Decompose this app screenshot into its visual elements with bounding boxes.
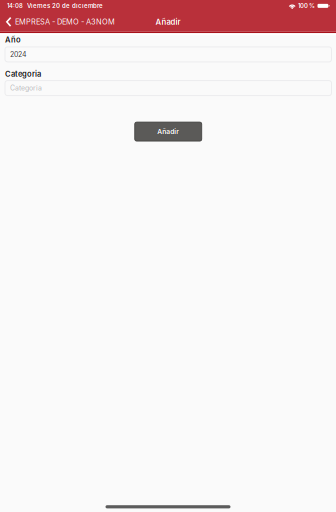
staticText: 14:08 — [7, 2, 23, 9]
staticText: Categoria — [5, 69, 41, 79]
staticText: Categoria — [10, 84, 42, 92]
staticText: Año — [5, 35, 21, 44]
button[interactable]: Categoria — [5, 81, 331, 96]
staticText: Añadir — [157, 128, 179, 136]
staticText: EMPRESA - DEMO - A3NOM — [15, 17, 115, 26]
staticText: Viernes 20 de diciembre — [27, 2, 103, 9]
staticText: 2024 — [10, 50, 26, 59]
staticText: 100 % — [298, 2, 315, 9]
button[interactable]: 2024 — [5, 47, 331, 62]
button[interactable]: Añadir — [135, 122, 202, 141]
button[interactable]: EMPRESA - DEMO - A3NOM — [0, 13, 120, 31]
staticText: Añadir — [155, 17, 180, 27]
